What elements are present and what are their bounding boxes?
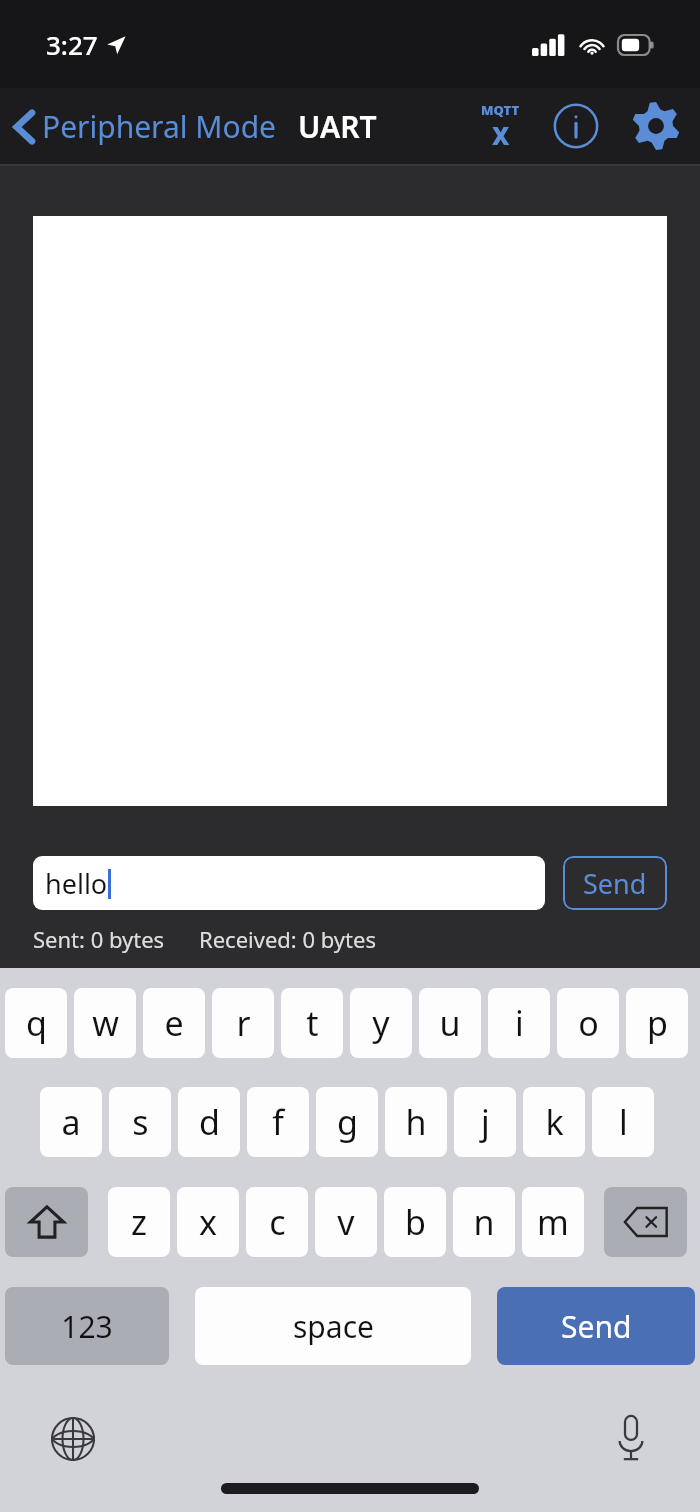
button[interactable]: Peripheral Mode — [14, 106, 276, 147]
staticText: k — [545, 1099, 564, 1145]
staticText: w — [92, 1000, 119, 1046]
staticText: Send — [583, 865, 647, 902]
button[interactable]: z — [108, 1187, 170, 1257]
staticText: i — [515, 1000, 524, 1046]
staticText: z — [131, 1199, 147, 1245]
button[interactable]: f — [247, 1087, 309, 1157]
button[interactable]: p — [626, 988, 688, 1058]
button[interactable]: t — [281, 988, 343, 1058]
staticText: 123 — [61, 1306, 113, 1347]
button[interactable]: h — [385, 1087, 447, 1157]
staticText: a — [61, 1099, 81, 1145]
button[interactable]: q — [5, 988, 67, 1058]
staticText: u — [439, 1000, 461, 1046]
button[interactable]: w — [74, 988, 136, 1058]
button[interactable]: b — [384, 1187, 446, 1257]
button[interactable]: 123 — [5, 1287, 169, 1365]
staticText: f — [272, 1099, 284, 1145]
staticText: Peripheral Mode — [42, 106, 276, 147]
staticText: o — [578, 1000, 599, 1046]
staticText: b — [405, 1199, 426, 1245]
staticText: h — [405, 1099, 427, 1145]
staticText: r — [236, 1000, 251, 1046]
staticText: p — [647, 1000, 668, 1046]
button[interactable]: l — [592, 1087, 654, 1157]
staticText: c — [269, 1199, 286, 1245]
staticText: q — [26, 1000, 47, 1046]
button[interactable]: Send — [563, 856, 667, 910]
button[interactable]: n — [453, 1187, 515, 1257]
staticText: MQTT — [481, 101, 520, 119]
staticText: v — [337, 1199, 355, 1245]
button[interactable]: o — [557, 988, 619, 1058]
button[interactable]: Dictate — [604, 1412, 658, 1466]
staticText: X — [492, 119, 510, 152]
staticText: t — [306, 1000, 319, 1046]
staticText: d — [199, 1099, 220, 1145]
button[interactable]: y — [350, 988, 412, 1058]
staticText: hello — [45, 865, 108, 902]
button[interactable]: hello — [33, 856, 545, 910]
staticText: g — [337, 1099, 358, 1145]
staticText: n — [473, 1199, 495, 1245]
button[interactable]: Send — [497, 1287, 695, 1365]
button[interactable]: k — [523, 1087, 585, 1157]
button[interactable]: c — [246, 1187, 308, 1257]
button[interactable]: j — [454, 1087, 516, 1157]
staticText: s — [132, 1099, 149, 1145]
button[interactable]: u — [419, 988, 481, 1058]
staticText: Sent: 0 bytes — [33, 924, 165, 954]
button[interactable]: i — [488, 988, 550, 1058]
staticText: Received: 0 bytes — [199, 924, 376, 954]
button[interactable]: x — [177, 1187, 239, 1257]
staticText: space — [293, 1306, 374, 1347]
button[interactable]: space — [195, 1287, 471, 1365]
button[interactable]: v — [315, 1187, 377, 1257]
button[interactable]: m — [522, 1187, 584, 1257]
button[interactable]: r — [212, 988, 274, 1058]
button[interactable]: MQTT X — [472, 98, 528, 154]
staticText: 3:27 — [46, 27, 98, 62]
staticText: Send — [561, 1306, 632, 1347]
button[interactable]: Info — [550, 100, 602, 152]
button[interactable]: Change keyboard language — [46, 1412, 100, 1466]
button[interactable]: Settings — [628, 98, 684, 154]
staticText: e — [164, 1000, 184, 1046]
staticText: y — [372, 1000, 390, 1046]
button[interactable]: s — [109, 1087, 171, 1157]
staticText: UART — [298, 106, 377, 147]
staticText: x — [199, 1199, 217, 1245]
button[interactable]: d — [178, 1087, 240, 1157]
staticText: l — [619, 1099, 628, 1145]
staticText: m — [537, 1199, 569, 1245]
button[interactable]: Backspace — [604, 1187, 687, 1257]
button[interactable]: Shift — [5, 1187, 88, 1257]
staticText: j — [481, 1099, 490, 1145]
button[interactable]: e — [143, 988, 205, 1058]
button[interactable]: g — [316, 1087, 378, 1157]
button[interactable]: a — [40, 1087, 102, 1157]
